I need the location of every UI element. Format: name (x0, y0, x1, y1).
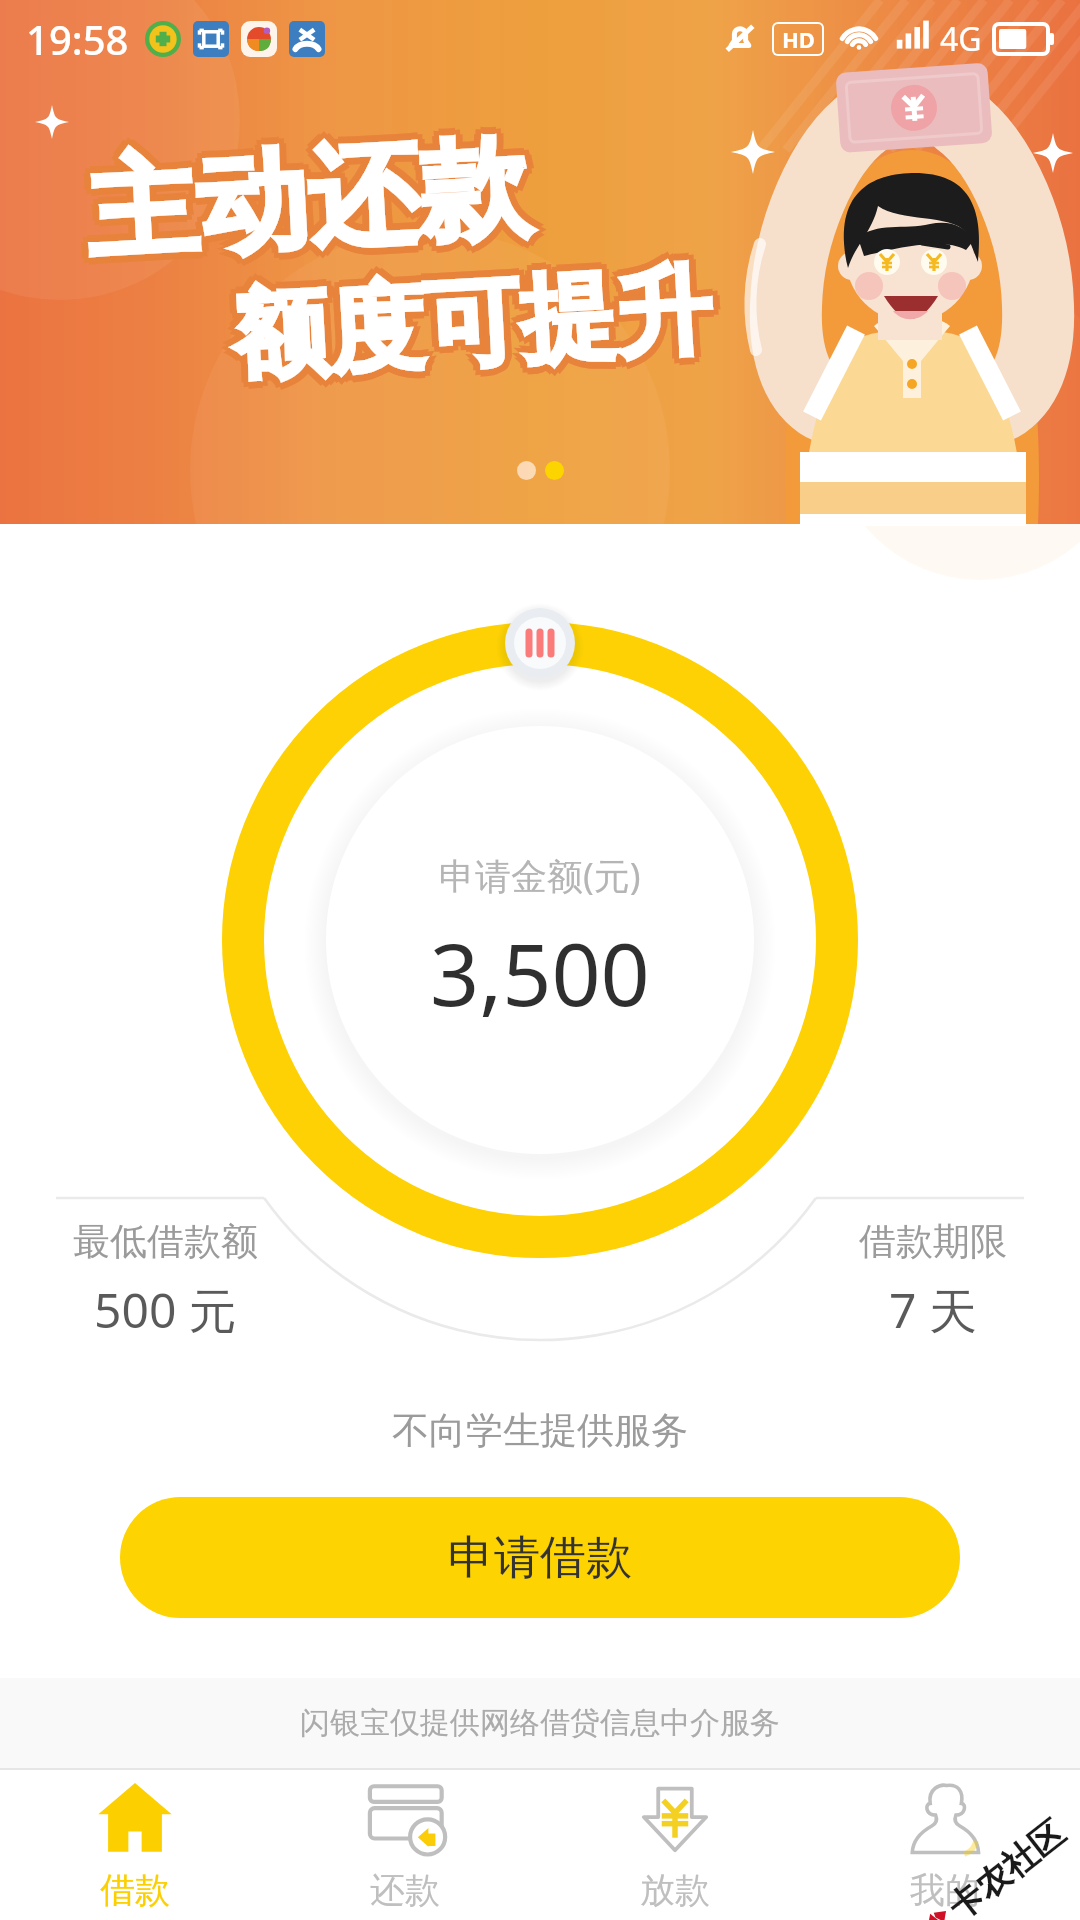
staticText: 额度可提升 (229, 251, 715, 398)
staticText: 额度可提升 (224, 246, 710, 394)
staticText: 主动还款 (78, 123, 529, 288)
staticText: 7 天 (889, 1277, 977, 1343)
staticText: 借款期限 (859, 1218, 1007, 1265)
staticText: 500 元 (94, 1277, 237, 1343)
button[interactable]: 我的 (810, 1779, 1080, 1912)
staticText: 闪银宝仅提供网络借贷信息中介服务 (300, 1704, 780, 1742)
button[interactable]: 申请借款 (120, 1497, 960, 1618)
staticText: 我的 (910, 1868, 980, 1912)
staticText: 放款 (640, 1868, 710, 1912)
staticText: 主动还款 (75, 118, 526, 283)
staticText: 额度可提升 (236, 250, 722, 398)
staticText: 主动还款 (87, 112, 538, 277)
staticText: 主动还款 (82, 118, 533, 282)
staticText: 额度可提升 (229, 258, 715, 405)
staticText: 额度可提升 (222, 251, 708, 399)
staticText: 额度可提升 (234, 255, 720, 403)
button[interactable]: 还款 (270, 1779, 540, 1912)
staticText: 主动还款 (82, 111, 533, 275)
staticText: 不向学生提供服务 (392, 1407, 688, 1454)
button[interactable]: 借款 (0, 1779, 270, 1912)
staticText: 额度可提升 (234, 245, 720, 393)
staticText: 4G (940, 17, 982, 61)
staticText: 19:58 (26, 12, 129, 66)
staticText: 主动还款 (83, 125, 534, 289)
staticText: 最低借款额 (73, 1218, 258, 1265)
staticText: HD (782, 24, 815, 54)
staticText: 额度可提升 (224, 256, 710, 404)
staticText: 借款 (100, 1868, 170, 1912)
staticText: 主动还款 (88, 122, 539, 287)
staticText: 卡农社区 (940, 1811, 1073, 1920)
staticText: 主动还款 (89, 117, 540, 282)
staticText: 额度可提升 (229, 244, 715, 391)
staticText: 主动还款 (77, 113, 528, 278)
staticText: 3,500 (430, 914, 650, 1031)
staticText: 申请借款 (448, 1529, 632, 1587)
staticText: 申请金额(元) (439, 851, 641, 900)
staticText: 还款 (370, 1868, 440, 1912)
button[interactable]: 放款 (540, 1779, 810, 1912)
